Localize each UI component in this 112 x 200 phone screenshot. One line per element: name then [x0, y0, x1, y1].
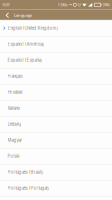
button[interactable]: English (United Kingdom)	[0, 20, 112, 36]
staticText: Español (España)	[8, 58, 43, 63]
button[interactable]: Back	[2, 9, 13, 21]
staticText: Language	[14, 13, 32, 18]
staticText: Hrvatski	[8, 90, 23, 95]
button[interactable]: Português (Brasil)	[0, 164, 112, 180]
staticText: 1.5K/s	[58, 2, 68, 7]
staticText: Português (Brasil)	[8, 170, 44, 175]
button[interactable]: Italiano	[0, 100, 112, 116]
button[interactable]: Hrvatski	[0, 84, 112, 100]
staticText: Português (Portugal)	[8, 186, 50, 191]
staticText: 9:07	[2, 2, 9, 7]
staticText: U	[78, 2, 81, 7]
staticText: Italiano	[8, 106, 21, 111]
button[interactable]: Magyar	[0, 132, 112, 148]
staticText: English (United Kingdom)	[8, 26, 59, 31]
staticText: Lietuvių	[8, 122, 21, 127]
staticText: Español (América)	[8, 42, 45, 47]
button[interactable]: Lietuvių	[0, 116, 112, 132]
button[interactable]: Español (América)	[0, 36, 112, 52]
staticText: 74%	[103, 2, 110, 7]
staticText: Français	[8, 74, 23, 79]
button[interactable]: Français	[0, 68, 112, 84]
staticText: Magyar	[8, 138, 23, 143]
staticText: Polski	[8, 154, 20, 159]
button[interactable]: Polski	[0, 148, 112, 164]
button[interactable]: Português (Portugal)	[0, 180, 112, 196]
button[interactable]: Español (España)	[0, 52, 112, 68]
